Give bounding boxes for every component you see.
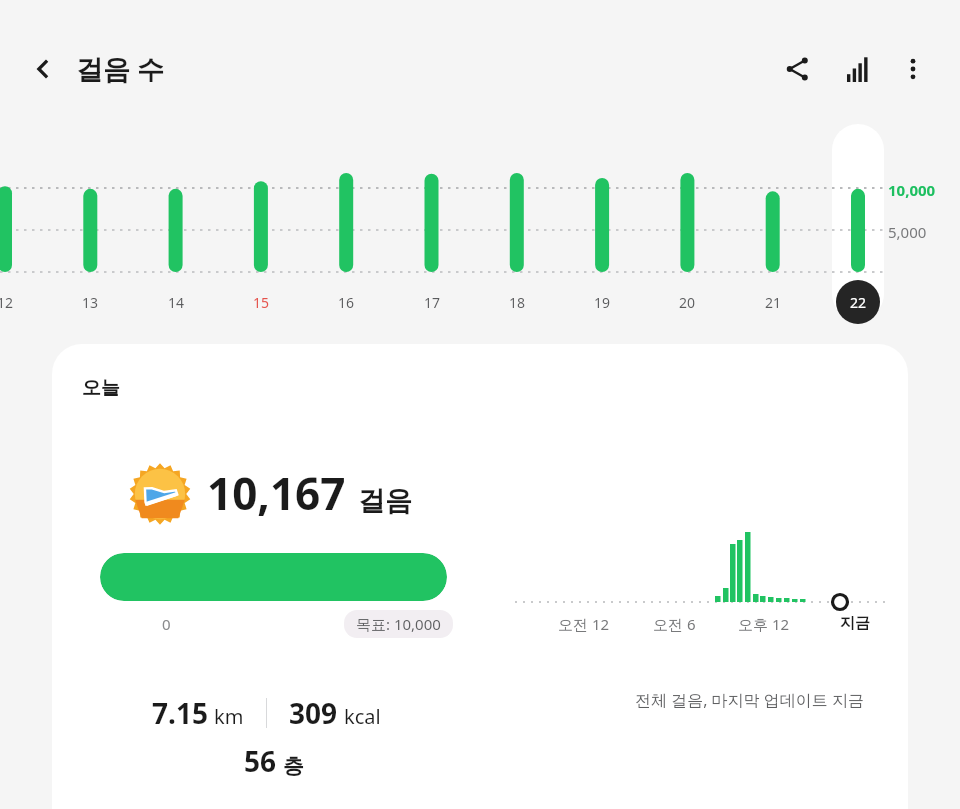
staticText: 10,167: [207, 463, 346, 523]
staticText: 지금: [840, 614, 870, 633]
staticText: 21: [765, 293, 782, 312]
button[interactable]: 21: [747, 280, 799, 324]
staticText: 걸음 수: [76, 50, 165, 87]
staticText: 층: [283, 753, 304, 779]
staticText: 309: [289, 694, 338, 732]
staticText: kcal: [344, 703, 381, 730]
staticText: 전체 걸음, 마지막 업데이트 지금: [635, 689, 864, 711]
staticText: 13: [82, 293, 99, 312]
button[interactable]: 14: [150, 280, 202, 324]
button[interactable]: More options: [891, 47, 935, 91]
staticText: 0: [162, 614, 171, 634]
staticText: 10,000: [888, 180, 936, 200]
staticText: 오전 6: [653, 614, 696, 634]
staticText: 걸음: [358, 484, 412, 518]
staticText: 오늘: [82, 376, 120, 400]
button[interactable]: 19: [576, 280, 628, 324]
button[interactable]: 12: [0, 280, 31, 324]
button[interactable]: [100, 553, 447, 601]
staticText: 7.15: [152, 694, 208, 732]
staticText: 20: [679, 293, 696, 312]
button[interactable]: Chart: [835, 47, 879, 91]
button[interactable]: Back: [22, 47, 66, 91]
staticText: 22: [850, 293, 867, 312]
button[interactable]: 17: [406, 280, 458, 324]
staticText: 15: [253, 293, 270, 312]
staticText: 5,000: [888, 222, 927, 242]
button[interactable]: 18: [491, 280, 543, 324]
button[interactable]: 15: [235, 280, 287, 324]
staticText: 오후 12: [738, 614, 790, 634]
staticText: 오전 12: [558, 614, 610, 634]
button[interactable]: 13: [64, 280, 116, 324]
button[interactable]: 16: [320, 280, 372, 324]
button[interactable]: Share: [775, 47, 819, 91]
button[interactable]: 오늘: [52, 344, 908, 809]
staticText: 56: [244, 742, 277, 780]
staticText: 19: [594, 293, 611, 312]
staticText: 17: [424, 293, 441, 312]
staticText: 12: [0, 293, 14, 312]
staticText: 목표: 10,000: [356, 614, 441, 634]
staticText: 18: [509, 293, 526, 312]
button[interactable]: 20: [661, 280, 713, 324]
staticText: 16: [338, 293, 355, 312]
button[interactable]: 22: [832, 280, 884, 324]
staticText: km: [214, 703, 244, 730]
staticText: 14: [168, 293, 185, 312]
